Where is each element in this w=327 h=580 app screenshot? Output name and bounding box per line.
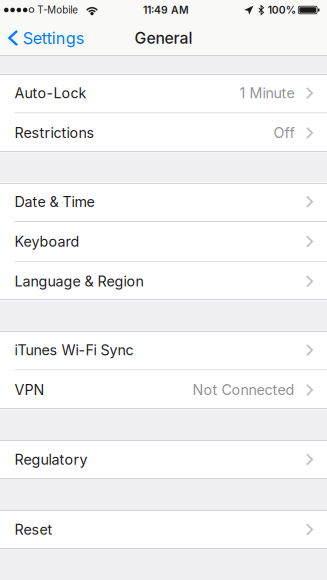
button[interactable]: Language & Region — [0, 262, 327, 301]
staticText: Date & Time — [14, 193, 94, 210]
staticText: Auto-Lock — [14, 84, 86, 102]
button[interactable]: Date & Time — [0, 182, 327, 221]
staticText: Settings — [23, 28, 85, 48]
button[interactable]: Restrictions — [0, 113, 327, 152]
staticText: Not Connected — [192, 381, 294, 399]
staticText: Off — [273, 124, 294, 142]
staticText: 1 Minute — [239, 84, 294, 102]
button[interactable]: iTunes Wi-Fi Sync — [0, 331, 327, 370]
staticText: iTunes Wi-Fi Sync — [14, 341, 133, 359]
staticText: VPN — [14, 381, 44, 399]
staticText: General — [134, 28, 192, 47]
staticText: 11:49 AM — [143, 4, 189, 16]
button[interactable]: VPN — [0, 370, 327, 409]
staticText: Language & Region — [14, 273, 143, 290]
staticText: Regulatory — [14, 451, 87, 468]
button[interactable]: Reset — [0, 510, 327, 549]
staticText: Restrictions — [14, 124, 94, 142]
button[interactable]: Auto-Lock — [0, 74, 327, 113]
staticText: Keyboard — [14, 233, 79, 250]
button[interactable]: Regulatory — [0, 440, 327, 479]
button[interactable]: Settings — [0, 20, 95, 56]
button[interactable]: Keyboard — [0, 222, 327, 261]
staticText: Reset — [14, 521, 52, 538]
staticText: 100% — [268, 4, 296, 16]
staticText: T-Mobile — [37, 4, 78, 16]
